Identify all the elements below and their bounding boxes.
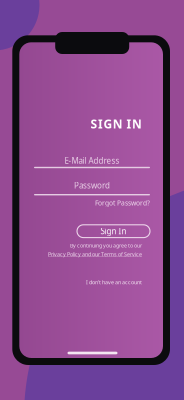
- staticText: I don't have an account: [86, 279, 142, 286]
- button[interactable]: Sign In: [77, 225, 150, 238]
- staticText: Privacy Policy and our Terms of Service: [48, 251, 142, 258]
- staticText: Forgot Password?: [95, 198, 150, 207]
- staticText: Sign In: [100, 226, 126, 236]
- button[interactable]: Forgot Password?: [34, 198, 150, 207]
- staticText: SIGN IN: [91, 116, 142, 132]
- staticText: E-Mail Address: [64, 155, 119, 166]
- staticText: By continuing you agree to our: [70, 242, 142, 249]
- staticText: Password: [74, 180, 110, 191]
- button[interactable]: I don't have an account: [34, 278, 142, 287]
